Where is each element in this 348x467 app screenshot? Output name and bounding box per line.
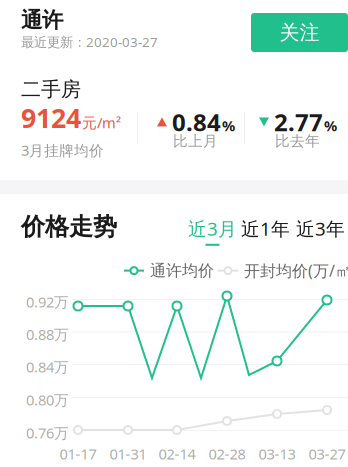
staticText: 03-27 bbox=[308, 444, 345, 463]
staticText: % bbox=[324, 116, 337, 135]
staticText: 03-13 bbox=[258, 444, 295, 463]
button[interactable]: 近1年 bbox=[241, 216, 290, 246]
staticText: 最近更新：2020-03-27 bbox=[21, 33, 158, 51]
staticText: 01-17 bbox=[59, 444, 96, 463]
staticText: 二手房 bbox=[21, 77, 81, 102]
button[interactable]: 近3年 bbox=[296, 216, 345, 246]
staticText: 0.92万 bbox=[26, 292, 69, 311]
button[interactable]: 近3月 bbox=[188, 216, 237, 246]
staticText: 开封均价(万/㎡) bbox=[244, 260, 348, 281]
staticText: 0.84万 bbox=[26, 357, 69, 376]
staticText: 通许均价 bbox=[150, 261, 214, 280]
staticText: 01-31 bbox=[109, 444, 146, 463]
staticText: 关注 bbox=[279, 20, 319, 45]
staticText: 9124 bbox=[21, 100, 81, 135]
staticText: 0.76万 bbox=[26, 423, 69, 442]
staticText: 02-14 bbox=[158, 444, 195, 463]
staticText: 0.84 bbox=[172, 106, 221, 138]
staticText: 比去年 bbox=[275, 132, 320, 150]
staticText: 价格走势 bbox=[21, 212, 117, 241]
staticText: 比上月 bbox=[173, 132, 218, 150]
staticText: 通许 bbox=[21, 7, 63, 33]
staticText: 0.80万 bbox=[26, 390, 69, 409]
staticText: % bbox=[222, 116, 235, 135]
staticText: 近1年 bbox=[241, 216, 290, 241]
staticText: 元/m² bbox=[82, 113, 121, 132]
staticText: 0.88万 bbox=[26, 324, 69, 344]
staticText: 近3月 bbox=[188, 216, 237, 241]
staticText: 02-28 bbox=[208, 444, 245, 463]
staticText: 近3年 bbox=[296, 216, 345, 241]
staticText: 3月挂牌均价 bbox=[21, 140, 104, 160]
staticText: 2.77 bbox=[274, 106, 323, 138]
button[interactable]: 关注 bbox=[251, 13, 348, 52]
